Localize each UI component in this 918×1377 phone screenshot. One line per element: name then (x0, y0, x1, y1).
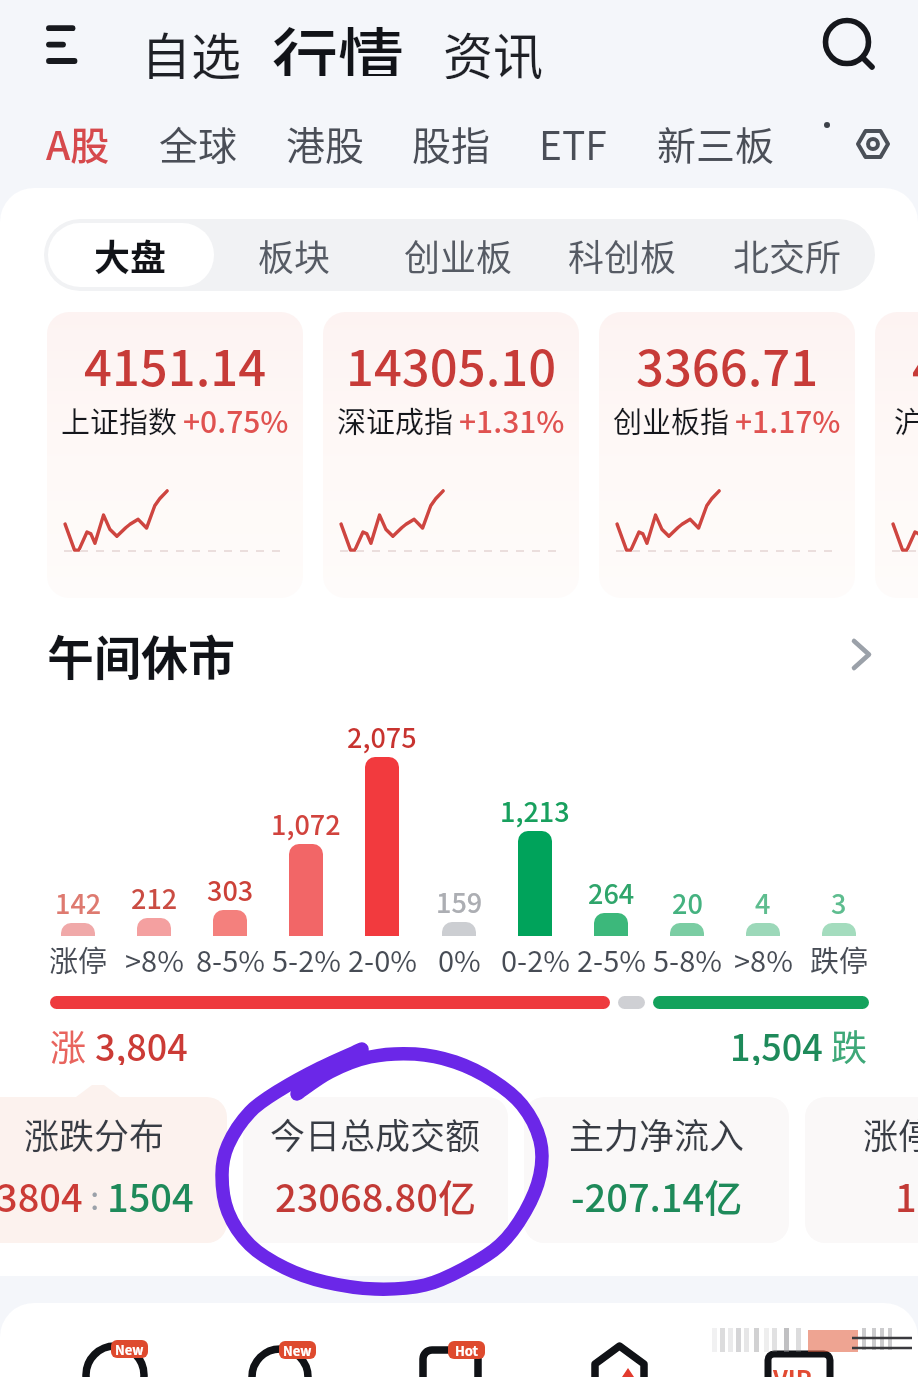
staticText: 涨 (50, 1019, 95, 1065)
staticText: +1.31% (459, 398, 565, 441)
staticText: 股指 (412, 115, 491, 171)
staticText: 2-0% (348, 938, 417, 980)
staticText: 20 (672, 883, 703, 922)
button[interactable]: 全球 (159, 113, 238, 173)
button[interactable]: 3366.71 (599, 312, 855, 598)
staticText: New (115, 1340, 144, 1358)
button[interactable]: Hot stocks (410, 1322, 520, 1377)
staticText: 5-8% (653, 938, 722, 980)
staticText: 上证指数 (61, 399, 178, 441)
staticText: 142 (55, 883, 102, 922)
button[interactable]: 北交所 (712, 219, 862, 291)
staticText: 跌 (823, 1019, 868, 1065)
button[interactable]: 股指 (412, 113, 491, 173)
staticText: -207.14亿 (571, 1168, 743, 1223)
staticText: 212 (131, 878, 178, 917)
staticText: 1504 (107, 1168, 194, 1223)
button[interactable]: 今日总成交额 (243, 1097, 508, 1243)
button[interactable] (48, 223, 214, 287)
button[interactable]: 4151.14 (47, 312, 303, 598)
button[interactable]: Funds (240, 1322, 350, 1377)
staticText: Hot (455, 1341, 479, 1359)
staticText: 121 : (895, 1168, 918, 1223)
button[interactable]: 午间休市 (0, 620, 918, 688)
staticText: New (283, 1341, 312, 1359)
button[interactable]: Market index (560, 1322, 690, 1377)
staticText: 涨停:跌停 (863, 1108, 918, 1159)
staticText: 264 (588, 873, 635, 912)
staticText: 北交所 (733, 229, 842, 281)
staticText: A股 (46, 115, 110, 171)
button[interactable]: 科创板 (547, 219, 697, 291)
staticText: 1,072 (271, 804, 341, 843)
button[interactable]: 4151.14 (875, 312, 918, 598)
staticText: 沪深300 (894, 399, 918, 441)
staticText: 新三板 (657, 115, 775, 171)
staticText: 159 (436, 882, 483, 921)
staticText: 主力净流入 (569, 1108, 745, 1159)
staticText: 14305.10 (346, 329, 557, 400)
staticText: >8% (125, 938, 184, 980)
staticText: 行情 (272, 6, 404, 76)
staticText: 涨停 (49, 938, 108, 980)
button[interactable]: ETF (539, 113, 607, 173)
button[interactable]: 主力净流入 (524, 1097, 789, 1243)
button[interactable]: Bonds (72, 1322, 182, 1377)
button[interactable]: 新三板 (657, 113, 775, 173)
staticText: 深证成指 (337, 399, 454, 441)
staticText: 创业板 (404, 229, 513, 281)
staticText: 午间休市 (47, 620, 235, 688)
staticText: 今日总成交额 (270, 1108, 481, 1159)
button[interactable]: 涨跌分布 (0, 1097, 227, 1243)
button[interactable]: VIP (740, 1322, 870, 1377)
staticText: 2-5% (577, 938, 646, 980)
button[interactable]: 行情 (272, 6, 404, 76)
button[interactable]: 港股 (286, 113, 365, 173)
staticText: 资讯 (443, 17, 543, 79)
staticText: 1,213 (500, 791, 570, 830)
button[interactable]: 涨停:跌停 (805, 1097, 918, 1243)
button[interactable]: 板块 (234, 219, 354, 291)
staticText: 303 (207, 870, 254, 909)
staticText: >8% (734, 938, 793, 980)
staticText: 3,804 (95, 1019, 188, 1065)
button[interactable]: 大盘 (70, 219, 190, 291)
button[interactable]: 资讯 (443, 17, 543, 79)
staticText: 8-5% (196, 938, 265, 980)
staticText: +0.75% (183, 398, 289, 441)
staticText: 涨跌分布 (24, 1108, 165, 1159)
staticText: 3 (831, 883, 847, 922)
button[interactable]: Search (815, 12, 887, 84)
staticText: 4151.14 (912, 329, 918, 400)
button[interactable]: Settings (850, 121, 895, 166)
staticText: 港股 (286, 115, 365, 171)
staticText: +1.17% (735, 398, 841, 441)
button[interactable]: 14305.10 (323, 312, 579, 598)
staticText: VIP (773, 1360, 812, 1377)
staticText: ETF (539, 115, 607, 171)
staticText: 全球 (159, 115, 238, 171)
staticText: 3804 (0, 1168, 83, 1223)
staticText: 板块 (258, 229, 331, 281)
staticText: 4 (755, 883, 771, 922)
staticText: 2,075 (347, 717, 417, 756)
staticText: 1,504 (730, 1019, 823, 1065)
button[interactable]: A股 (46, 113, 110, 173)
staticText: 科创板 (568, 229, 677, 281)
button[interactable]: 自选 (141, 17, 241, 79)
staticText: 创业板指 (613, 399, 730, 441)
button[interactable]: Menu (28, 10, 96, 78)
staticText: 自选 (141, 17, 241, 79)
staticText: 大盘 (94, 229, 167, 281)
staticText: 3366.71 (636, 329, 819, 400)
staticText: 0-2% (501, 938, 570, 980)
staticText: 5-2% (272, 938, 341, 980)
staticText: 23068.80亿 (275, 1168, 476, 1223)
staticText: 4151.14 (84, 329, 267, 400)
button[interactable]: 创业板 (383, 219, 533, 291)
staticText: 跌停 (810, 938, 869, 980)
staticText: 0% (438, 938, 481, 980)
staticText: : (83, 1173, 107, 1219)
